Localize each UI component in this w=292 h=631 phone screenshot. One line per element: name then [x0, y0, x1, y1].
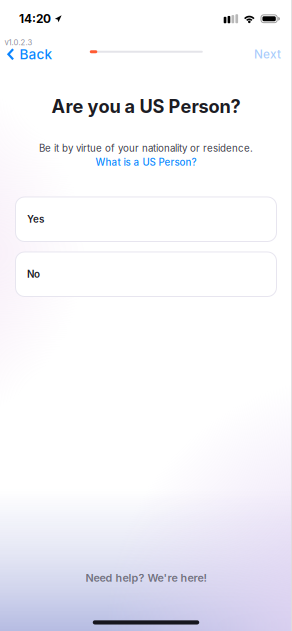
- staticText: Yes: [27, 213, 44, 225]
- button[interactable]: Back: [0, 43, 61, 65]
- staticText: Be it by virtue of your nationality or r…: [39, 142, 253, 154]
- staticText: 14:20: [19, 12, 51, 26]
- staticText: Back: [20, 46, 53, 62]
- button[interactable]: What is a US Person?: [91, 154, 200, 168]
- staticText: Next: [254, 47, 281, 61]
- button[interactable]: No: [15, 252, 276, 296]
- staticText: Are you a US Person?: [51, 95, 240, 117]
- button[interactable]: Yes: [15, 197, 276, 241]
- staticText: Need help? We're here!: [85, 571, 206, 584]
- staticText: No: [27, 268, 40, 280]
- button[interactable]: Need help? We're here!: [77, 567, 214, 588]
- staticText: What is a US Person?: [95, 156, 196, 168]
- button[interactable]: Next: [245, 43, 292, 65]
- staticText: v1.0.2.3: [4, 38, 32, 47]
